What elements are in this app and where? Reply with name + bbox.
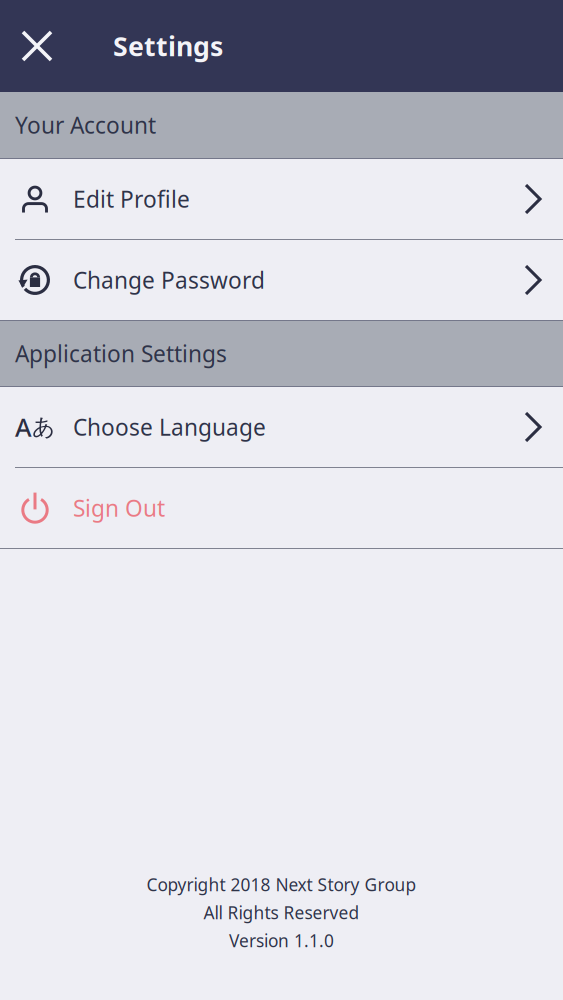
staticText: A — [15, 410, 32, 444]
staticText: あ — [32, 413, 55, 441]
staticText: All Rights Reserved — [203, 901, 359, 924]
staticText: Settings — [113, 28, 223, 64]
staticText: Sign Out — [73, 493, 165, 523]
button[interactable]: Close — [0, 0, 74, 92]
staticText: Copyright 2018 Next Story Group — [146, 873, 416, 896]
button[interactable]: Choose Language — [0, 387, 563, 467]
staticText: Change Password — [73, 265, 265, 295]
button[interactable]: Sign Out — [0, 468, 563, 548]
staticText: Your Account — [15, 110, 156, 140]
staticText: Choose Language — [73, 412, 266, 442]
button[interactable]: Edit Profile — [0, 159, 563, 239]
button[interactable]: Change Password — [0, 240, 563, 320]
staticText: Application Settings — [15, 338, 227, 368]
staticText: Version 1.1.0 — [229, 929, 334, 952]
staticText: Edit Profile — [73, 184, 190, 214]
